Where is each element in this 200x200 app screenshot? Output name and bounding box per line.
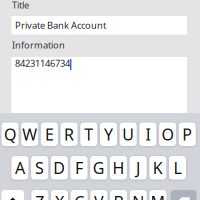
button[interactable]: V: [90, 190, 107, 200]
button[interactable]: E: [41, 122, 58, 146]
staticText: X: [55, 191, 64, 200]
button[interactable]: D: [51, 156, 68, 179]
staticText: Q: [4, 124, 16, 145]
button[interactable]: X: [51, 190, 68, 200]
staticText: Z: [35, 191, 44, 200]
button[interactable]: G: [90, 156, 107, 179]
staticText: B: [114, 191, 124, 200]
staticText: T: [84, 124, 93, 145]
button[interactable]: Delete: [170, 190, 196, 200]
staticText: D: [53, 157, 65, 178]
button[interactable]: F: [70, 156, 87, 179]
staticText: O: [162, 124, 174, 145]
button[interactable]: K: [149, 156, 166, 179]
staticText: F: [75, 157, 83, 178]
button[interactable]: Private Bank Account: [11, 16, 187, 34]
button[interactable]: Z: [31, 190, 48, 200]
button[interactable]: I: [139, 122, 156, 146]
staticText: J: [136, 157, 140, 178]
staticText: M: [150, 191, 165, 200]
staticText: Information: [12, 39, 65, 51]
button[interactable]: M: [149, 190, 166, 200]
staticText: L: [173, 157, 181, 178]
button[interactable]: N: [130, 190, 147, 200]
button[interactable]: A: [11, 156, 28, 179]
staticText: N: [132, 191, 144, 200]
staticText: K: [153, 157, 163, 178]
staticText: E: [45, 124, 54, 145]
staticText: C: [74, 191, 84, 200]
button[interactable]: Q: [1, 122, 18, 146]
staticText: V: [94, 191, 104, 200]
staticText: W: [22, 124, 37, 145]
staticText: A: [15, 157, 25, 178]
staticText: P: [182, 124, 192, 145]
button[interactable]: J: [130, 156, 147, 179]
staticText: S: [35, 157, 44, 178]
staticText: Y: [104, 124, 113, 145]
staticText: R: [64, 124, 74, 145]
button[interactable]: 84231146734: [11, 57, 187, 113]
button[interactable]: R: [61, 122, 78, 146]
staticText: G: [93, 157, 105, 178]
button[interactable]: L: [169, 156, 186, 179]
button[interactable]: C: [71, 190, 88, 200]
button[interactable]: P: [179, 122, 196, 146]
button[interactable]: W: [21, 122, 38, 146]
staticText: Private Bank Account: [15, 19, 106, 31]
staticText: I: [145, 124, 150, 145]
staticText: H: [112, 157, 124, 178]
staticText: 84231146734: [15, 57, 70, 69]
button[interactable]: Y: [100, 122, 117, 146]
button[interactable]: O: [159, 122, 176, 146]
button[interactable]: H: [110, 156, 127, 179]
button[interactable]: T: [80, 122, 97, 146]
button[interactable]: U: [120, 122, 137, 146]
staticText: U: [122, 124, 134, 145]
button[interactable]: S: [31, 156, 48, 179]
button[interactable]: Shift: [1, 190, 24, 200]
staticText: Title: [12, 0, 29, 11]
button[interactable]: B: [110, 190, 127, 200]
